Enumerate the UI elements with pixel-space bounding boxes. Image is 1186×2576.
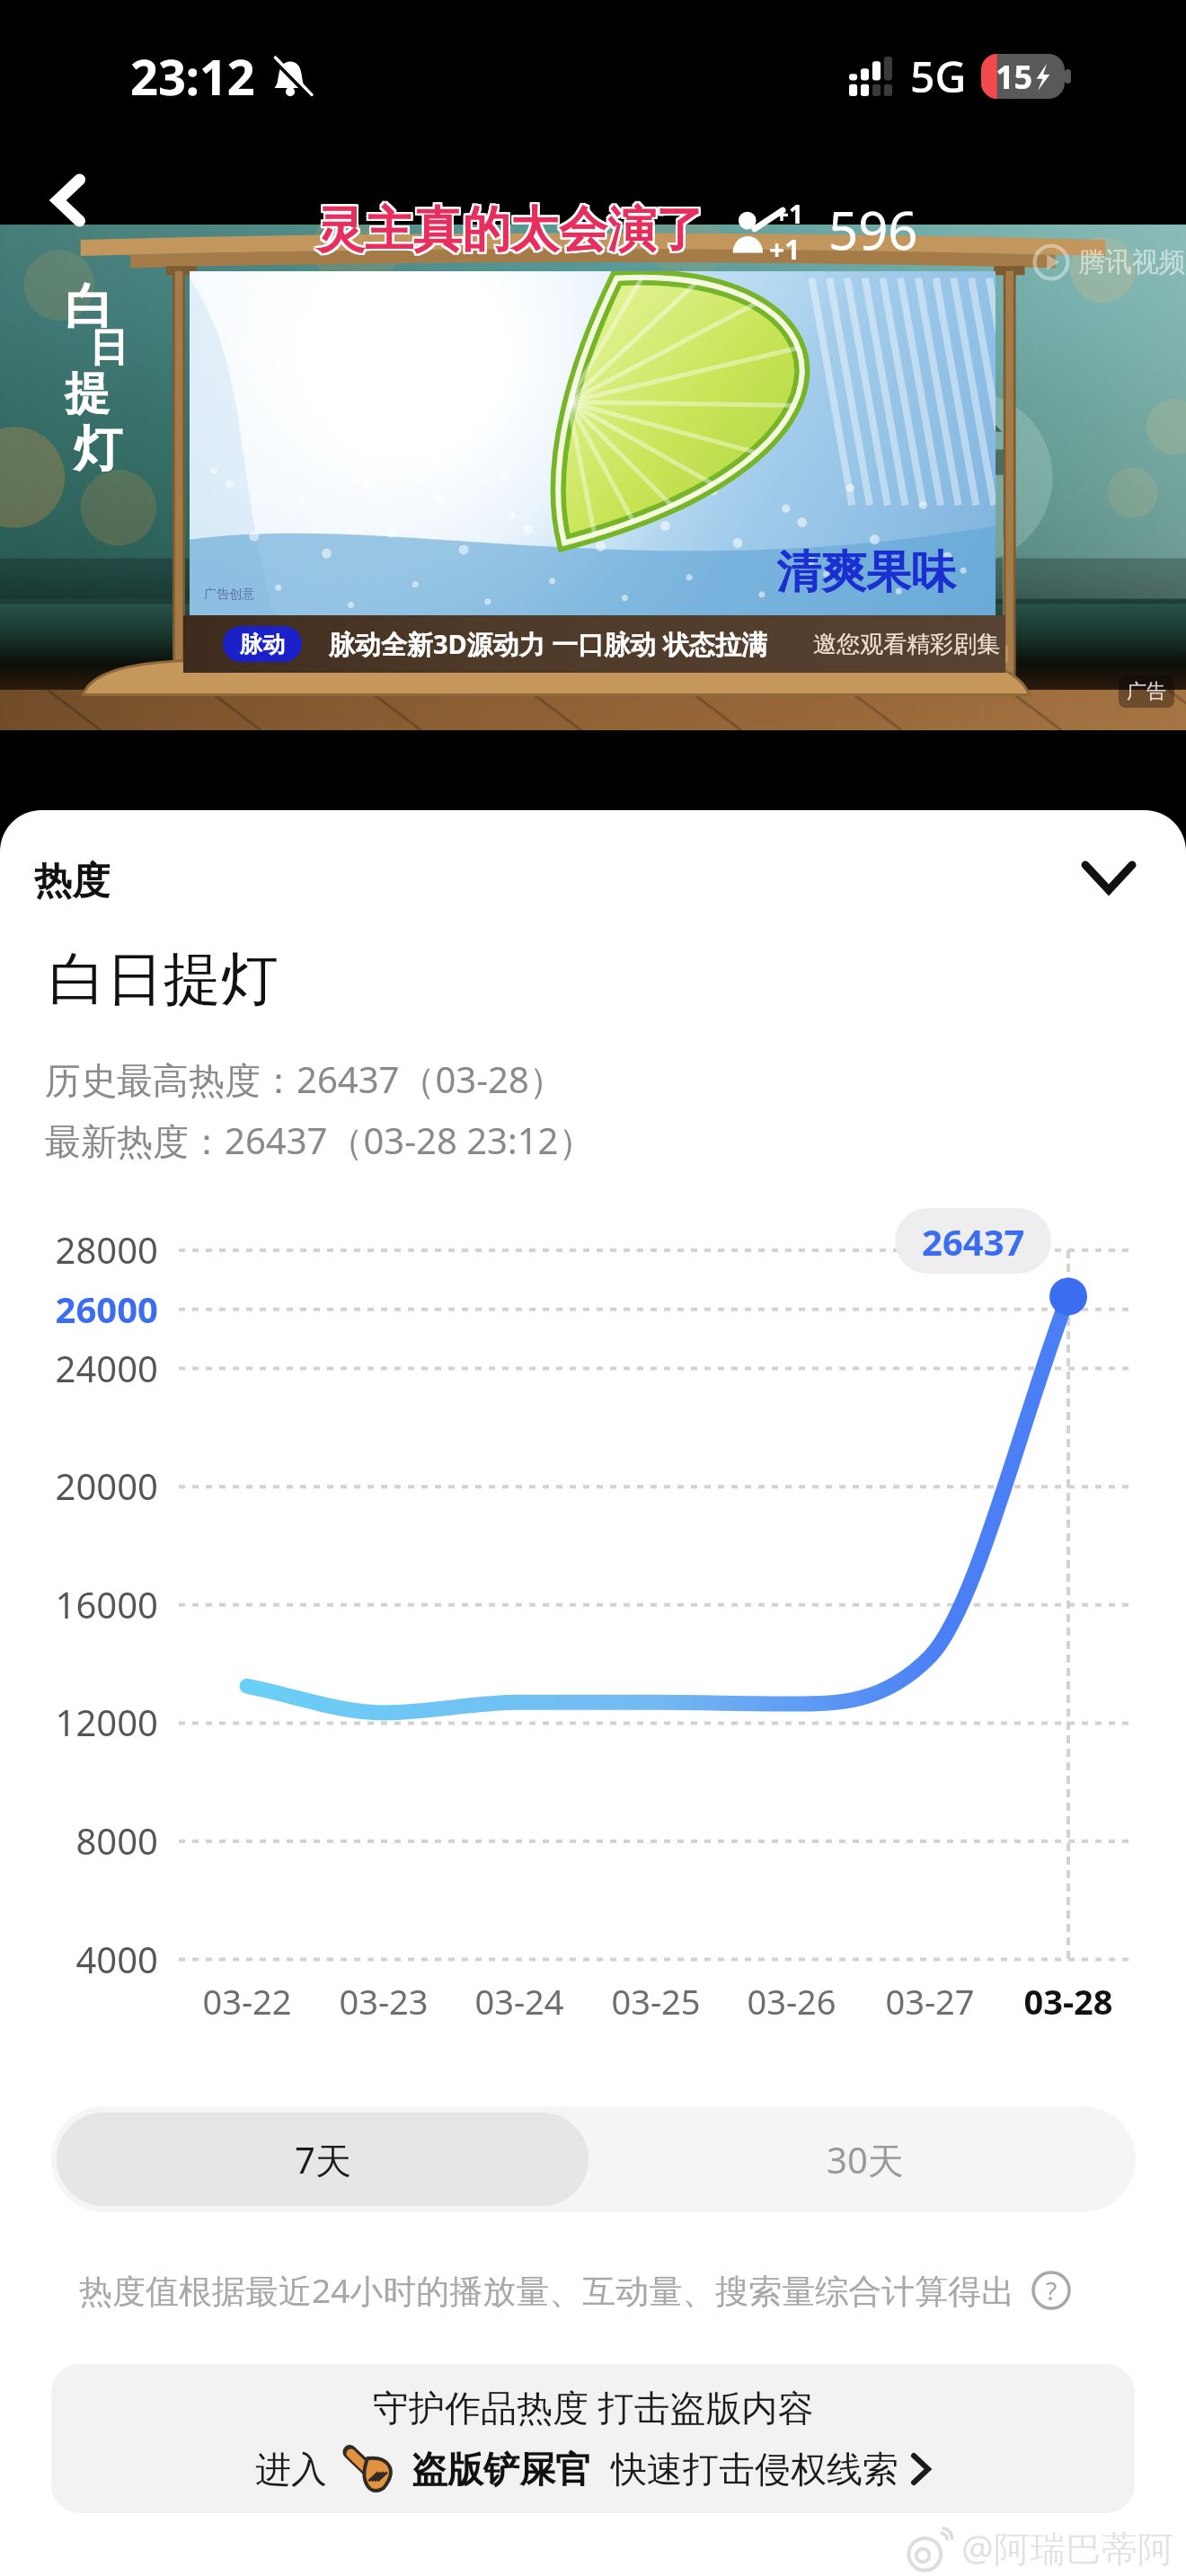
staticText: 快速打击侵权线索	[611, 2447, 898, 2492]
staticText: 盗版铲屎官	[412, 2447, 591, 2492]
staticText: 596	[828, 194, 918, 265]
staticText: 03-24	[447, 1978, 591, 2025]
staticText: 灵主真的太会演了	[316, 198, 704, 259]
staticText: 热度	[34, 858, 110, 905]
staticText: 03-22	[175, 1978, 319, 2025]
staticText: 26000	[0, 1284, 158, 1333]
staticText: 03-23	[312, 1978, 456, 2025]
staticText: 脉动	[240, 631, 285, 658]
staticText: 灵主真的太会演了	[318, 198, 706, 259]
staticText: 脉动全新3D源动力 一口脉动 状态拉满	[329, 626, 767, 662]
staticText: 日	[89, 323, 128, 373]
staticText: +1	[774, 197, 804, 231]
staticText: +1	[769, 231, 801, 268]
staticText: 23:12	[130, 43, 255, 110]
staticText: 灵主真的太会演了	[316, 201, 704, 262]
staticText: 03-27	[858, 1978, 1002, 2025]
staticText: 白日提灯	[49, 943, 279, 1016]
staticText: 15	[996, 55, 1033, 99]
staticText: 12000	[0, 1698, 158, 1746]
staticText: 广告	[1127, 679, 1166, 704]
staticText: 历史最高热度：26437（03-28）	[45, 1054, 565, 1104]
staticText: 广告创意	[204, 587, 254, 603]
staticText: 腾讯视频	[1078, 245, 1186, 279]
staticText: 8000	[0, 1816, 158, 1865]
staticText: 灵主真的太会演了	[316, 199, 704, 260]
button[interactable]: Help	[1030, 2269, 1073, 2312]
button[interactable]: 7天	[57, 2113, 589, 2206]
staticText: 邀您观看精彩剧集	[813, 630, 1000, 659]
staticText: 20000	[0, 1461, 158, 1510]
staticText: 守护作品热度 打击盗版内容	[373, 2382, 814, 2431]
button[interactable]: 30天	[594, 2106, 1136, 2212]
staticText: 提	[65, 366, 110, 422]
staticText: 灵主真的太会演了	[314, 201, 703, 262]
staticText: 26437	[922, 1217, 1025, 1266]
staticText: 28000	[0, 1225, 158, 1274]
button[interactable]: 热度	[0, 832, 1186, 931]
staticText: @阿瑞巴蒂阿	[961, 2523, 1173, 2572]
button[interactable]: 守护作品热度 打击盗版内容	[51, 2364, 1135, 2513]
button[interactable]: Collapse	[1064, 836, 1154, 926]
staticText: 16000	[0, 1580, 158, 1628]
staticText: 灵主真的太会演了	[314, 199, 703, 260]
staticText: 5G	[910, 47, 967, 105]
staticText: 灯	[74, 419, 122, 480]
staticText: 进入	[255, 2447, 327, 2492]
staticText: 最新热度：26437（03-28 23:12）	[45, 1116, 595, 1165]
staticText: 白	[65, 277, 113, 338]
staticText: ?	[1046, 2273, 1058, 2307]
staticText: 灵主真的太会演了	[314, 198, 703, 259]
staticText: 灵主真的太会演了	[318, 199, 706, 260]
button[interactable]: 广告	[1119, 675, 1174, 708]
staticText: 热度值根据最近24小时的播放量、互动量、搜索量综合计算得出	[79, 2267, 1015, 2313]
staticText: 7天	[295, 2135, 351, 2184]
button[interactable]: Back	[20, 151, 119, 250]
staticText: 03-28	[996, 1978, 1140, 2025]
staticText: 灵主真的太会演了	[318, 201, 706, 262]
staticText: 清爽果味	[776, 544, 956, 601]
staticText: 24000	[0, 1344, 158, 1392]
staticText: 4000	[0, 1935, 158, 1983]
staticText: 03-25	[584, 1978, 728, 2025]
staticText: 30天	[827, 2135, 904, 2184]
staticText: 03-26	[720, 1978, 863, 2025]
